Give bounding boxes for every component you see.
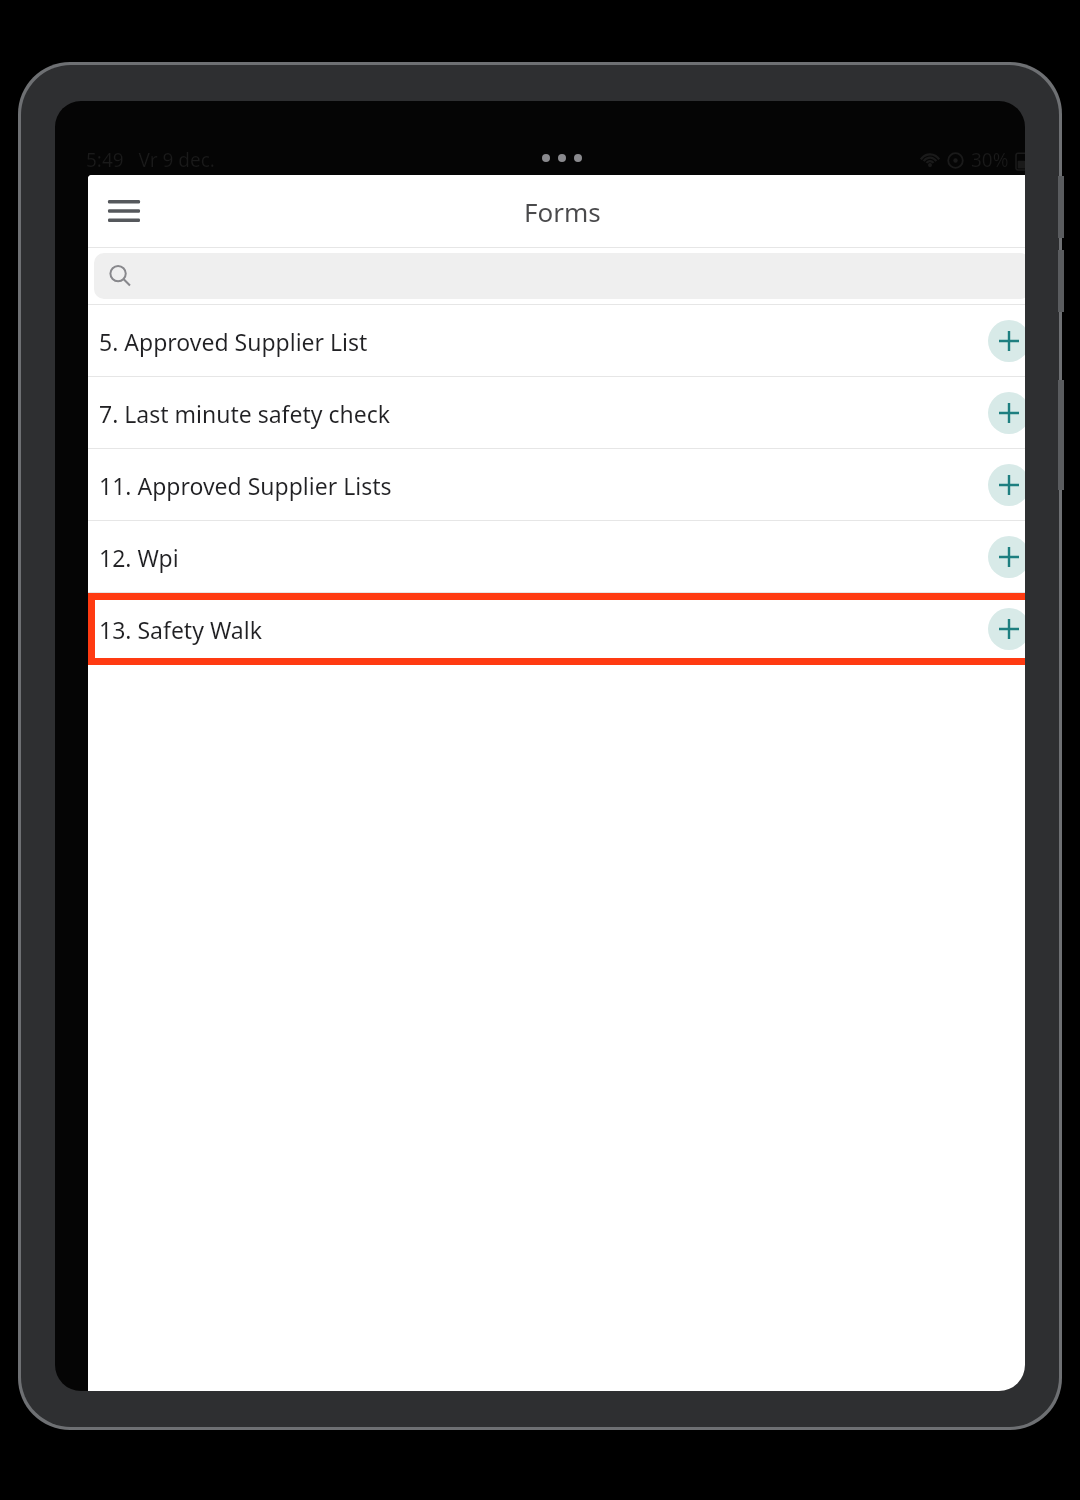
button[interactable]: Add 5. Approved Supplier List [988, 320, 1025, 362]
staticText: 5. Approved Supplier List [99, 326, 988, 357]
button[interactable] [94, 253, 1025, 299]
staticText: Forms [524, 194, 601, 229]
staticText: 30% [971, 147, 1009, 173]
staticText: 12. Wpi [99, 542, 988, 573]
button[interactable]: 11. Approved Supplier Lists [88, 449, 1025, 521]
button[interactable]: 13. Safety Walk [88, 593, 1025, 665]
button[interactable]: Open navigation menu [92, 179, 156, 243]
staticText: 11. Approved Supplier Lists [99, 470, 988, 501]
staticText: 13. Safety Walk [99, 614, 988, 645]
button[interactable]: Add 7. Last minute safety check [988, 392, 1025, 434]
button[interactable]: Add 11. Approved Supplier Lists [988, 464, 1025, 506]
staticText: 7. Last minute safety check [99, 398, 988, 429]
staticText: 5:49 Vr 9 dec. [86, 147, 215, 173]
button[interactable]: Add 13. Safety Walk [988, 608, 1025, 650]
button[interactable]: 5. Approved Supplier List [88, 305, 1025, 377]
button[interactable]: Add 12. Wpi [988, 536, 1025, 578]
button[interactable]: 7. Last minute safety check [88, 377, 1025, 449]
button[interactable]: 12. Wpi [88, 521, 1025, 593]
